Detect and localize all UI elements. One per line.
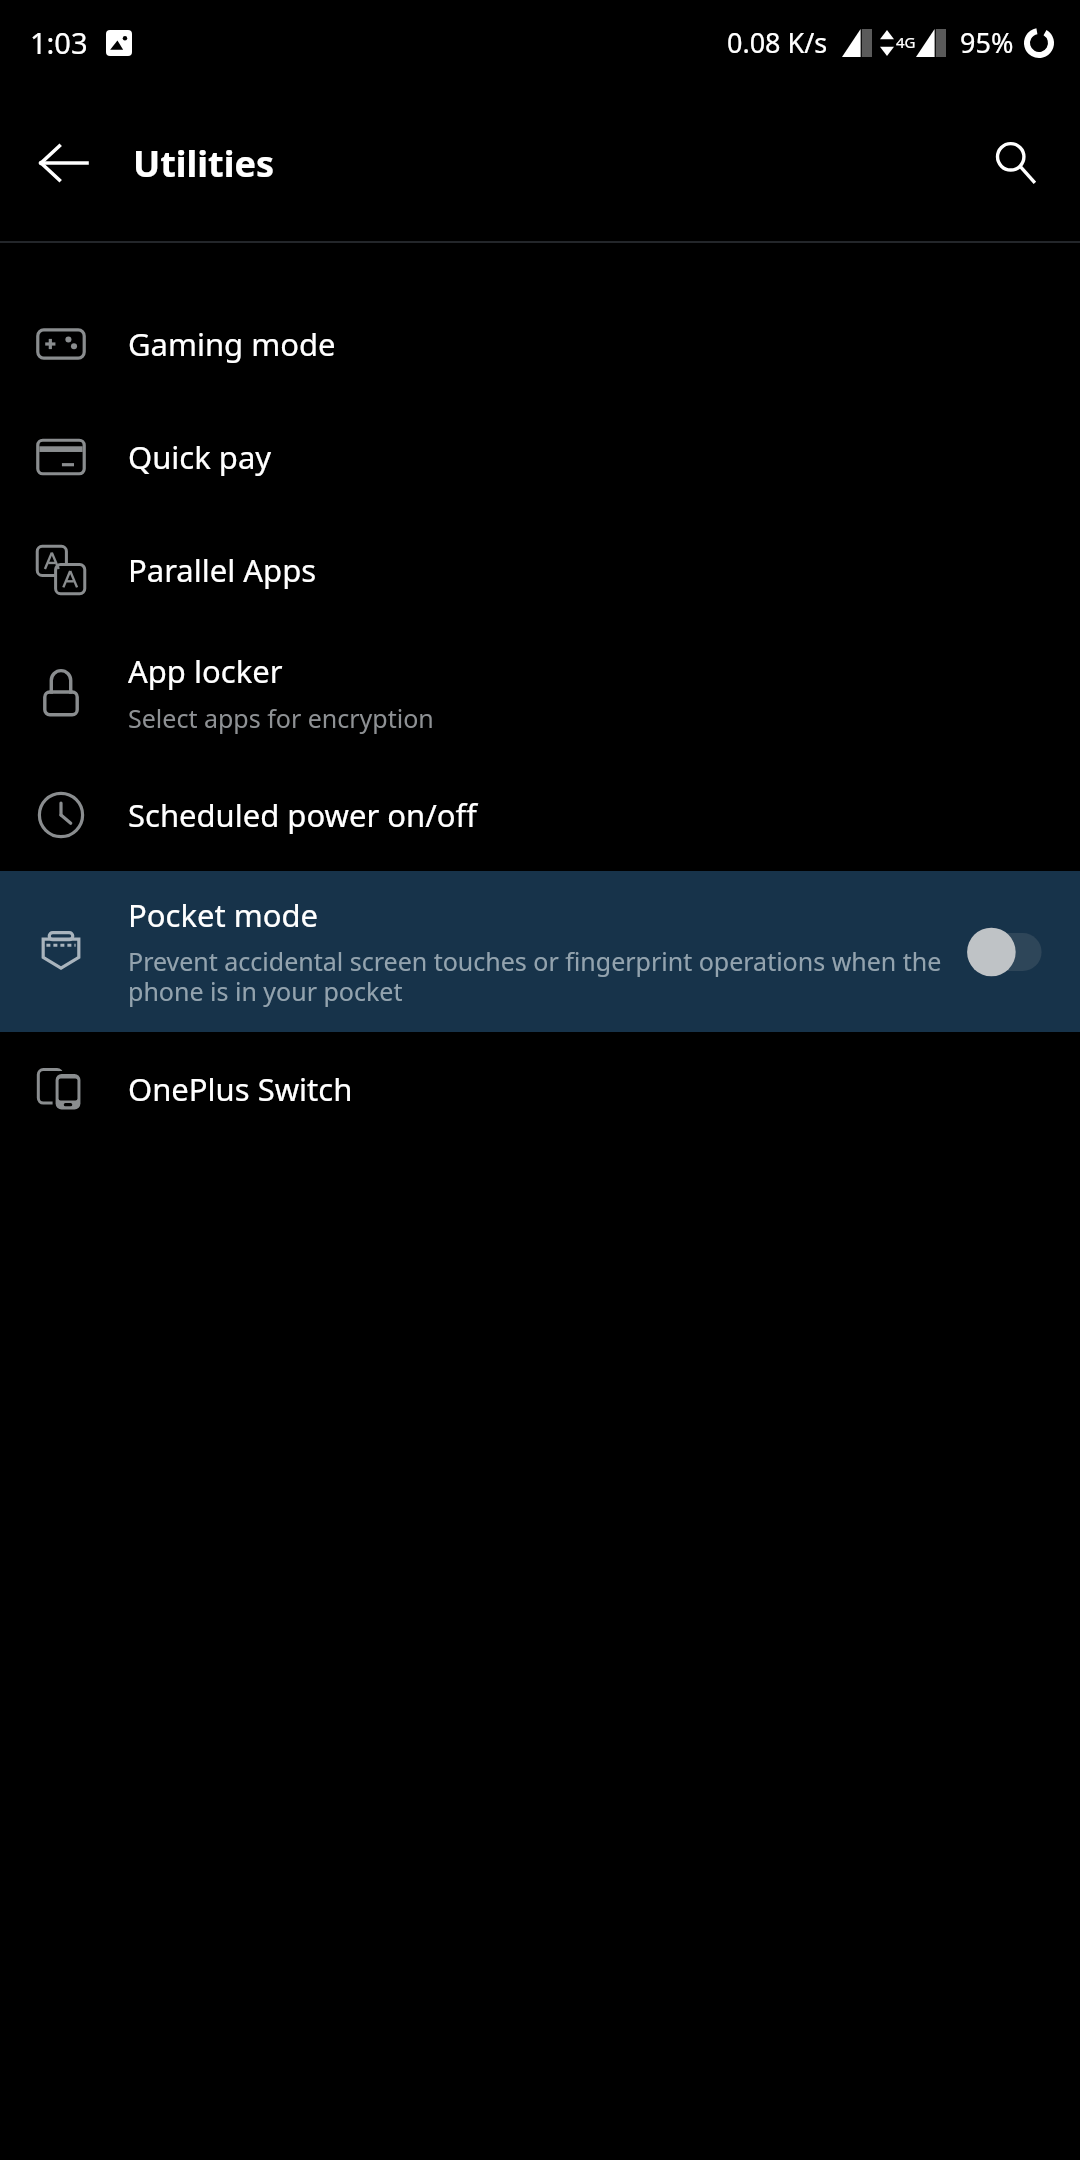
- button[interactable]: Scheduled power on/off: [0, 758, 1080, 871]
- staticText: Select apps for encryption: [128, 701, 434, 735]
- button[interactable]: Parallel Apps: [0, 513, 1080, 626]
- button[interactable]: Gaming mode: [0, 287, 1080, 400]
- staticText: Scheduled power on/off: [128, 794, 477, 836]
- staticText: Quick pay: [128, 436, 272, 478]
- staticText: Parallel Apps: [128, 549, 317, 591]
- button[interactable]: Pocket mode toggle: [966, 925, 1050, 979]
- button[interactable]: Back: [22, 121, 106, 205]
- button[interactable]: OnePlus Switch: [0, 1032, 1080, 1145]
- staticText: 1:03: [30, 23, 88, 62]
- staticText: 95%: [960, 24, 1014, 61]
- staticText: Prevent accidental screen touches or fin…: [128, 944, 946, 1009]
- staticText: Pocket mode: [128, 894, 318, 936]
- staticText: 0.08 K/s: [727, 24, 828, 61]
- button[interactable]: App locker: [0, 626, 1080, 758]
- staticText: Utilities: [133, 139, 275, 188]
- staticText: Gaming mode: [128, 323, 336, 365]
- staticText: OnePlus Switch: [128, 1068, 353, 1110]
- staticText: 4G: [896, 32, 916, 52]
- staticText: App locker: [128, 650, 283, 692]
- button[interactable]: Search: [974, 121, 1058, 205]
- button[interactable]: Quick pay: [0, 400, 1080, 513]
- button[interactable]: Pocket mode: [0, 871, 1080, 1032]
